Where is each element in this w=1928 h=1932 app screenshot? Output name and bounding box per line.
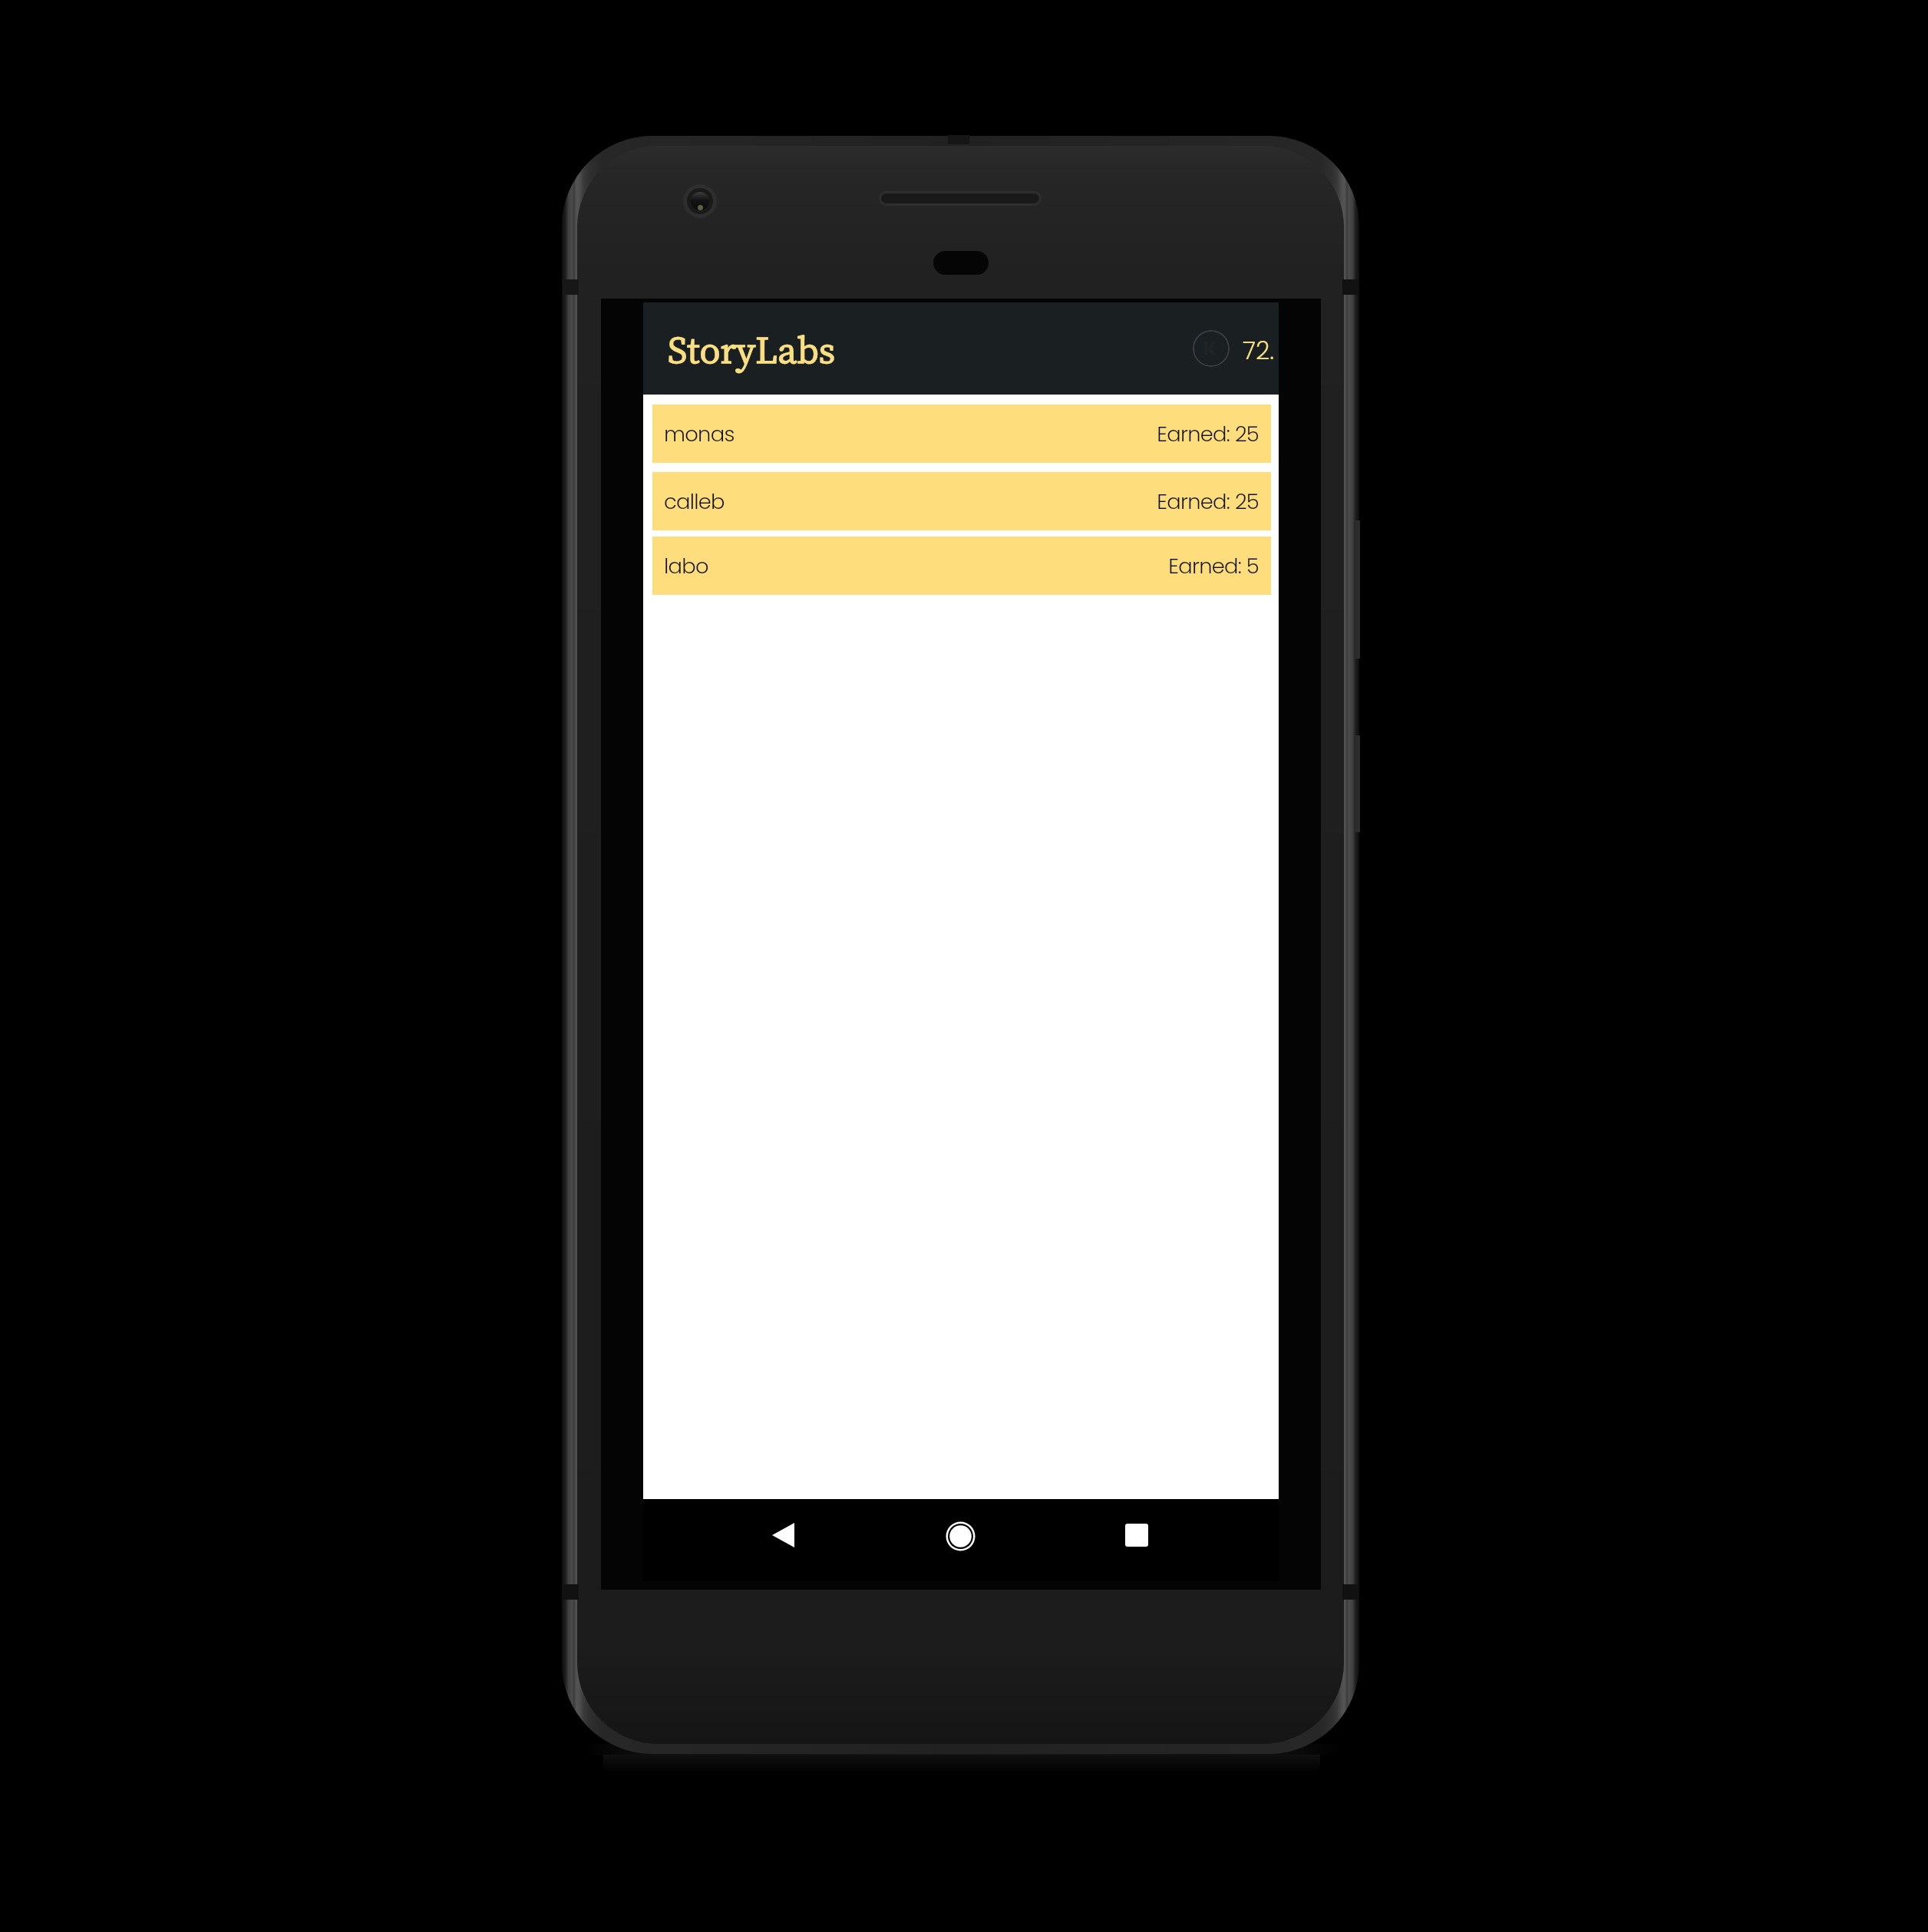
button[interactable]: calleb xyxy=(652,472,1271,530)
staticText: labo xyxy=(664,551,708,580)
button[interactable]: Back xyxy=(754,1505,813,1564)
staticText: Earned: 25 xyxy=(1157,487,1259,516)
staticText: calleb xyxy=(664,487,725,516)
staticText: StoryLabs xyxy=(668,325,836,372)
staticText: 72. xyxy=(1243,333,1275,368)
staticText: monas xyxy=(664,419,735,448)
staticText: Earned: 5 xyxy=(1168,551,1259,580)
button[interactable]: Recent apps xyxy=(1107,1505,1166,1564)
button[interactable]: Account xyxy=(1193,330,1230,367)
staticText: Earned: 25 xyxy=(1157,419,1259,448)
button[interactable]: Home xyxy=(931,1507,990,1566)
button[interactable]: labo xyxy=(652,537,1271,595)
button[interactable]: monas xyxy=(652,405,1271,463)
